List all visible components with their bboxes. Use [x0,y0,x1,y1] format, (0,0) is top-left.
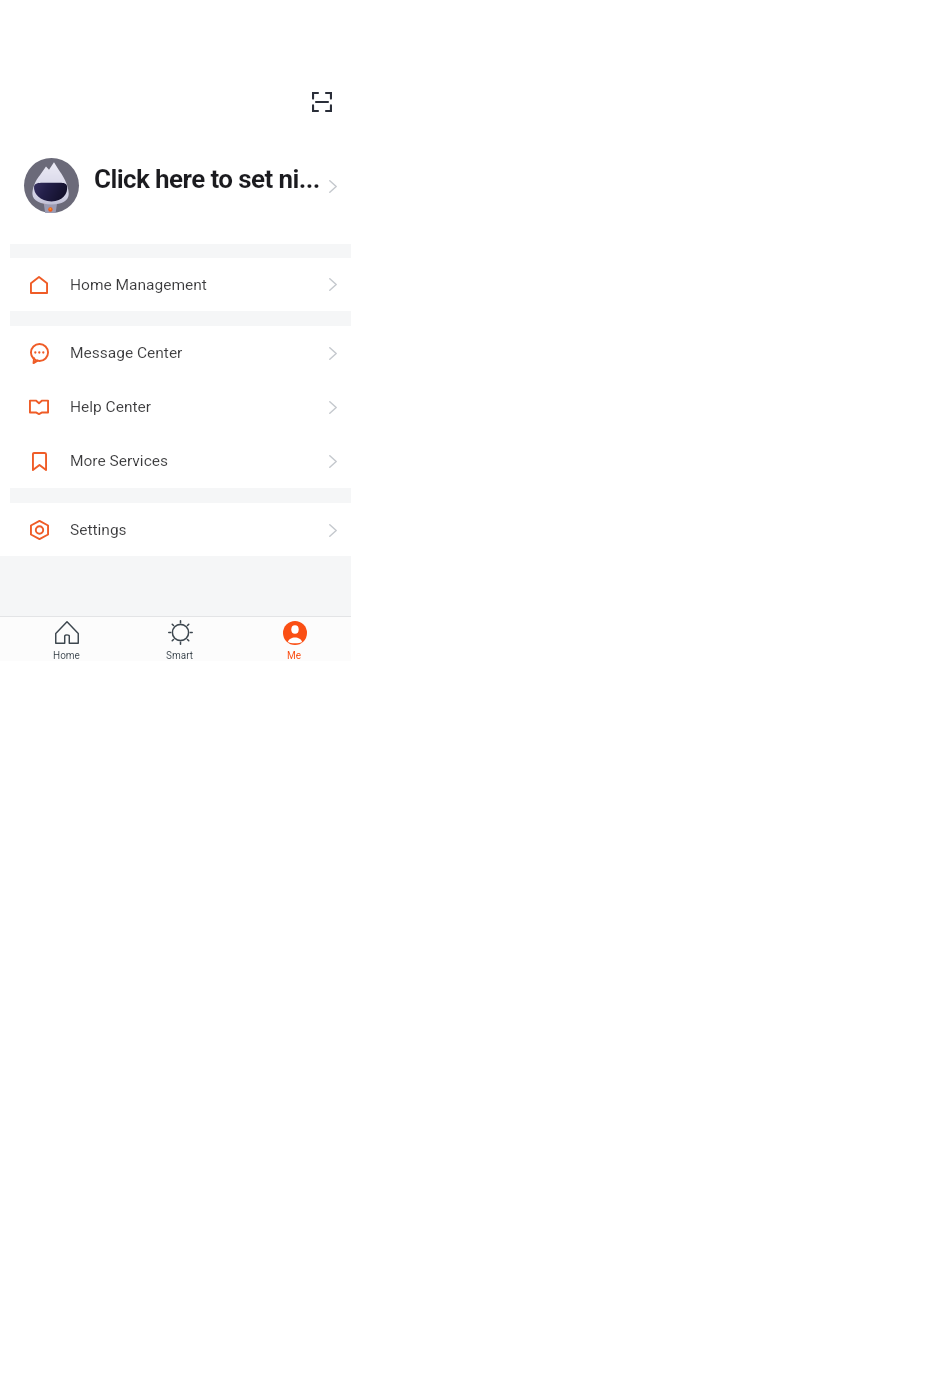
button[interactable]: Click here to set ni... [0,158,351,213]
staticText: Settings [70,521,127,539]
button[interactable]: Scan [307,87,337,117]
staticText: More Services [70,452,168,470]
button[interactable]: Help Center [0,380,351,434]
staticText: Home [53,650,80,661]
staticText: Smart [166,650,194,661]
staticText: Click here to set ni... [94,164,320,194]
staticText: Message Center [70,344,183,362]
staticText: Me [287,650,302,661]
button[interactable]: Home Management [0,258,351,311]
button[interactable]: Me [237,617,351,661]
button[interactable]: More Services [0,434,351,488]
button[interactable]: Home [9,617,123,661]
button[interactable]: Smart [123,617,237,661]
staticText: Help Center [70,398,152,416]
button[interactable]: Message Center [0,326,351,380]
button[interactable]: Settings [0,503,351,557]
staticText: Home Management [70,276,207,294]
